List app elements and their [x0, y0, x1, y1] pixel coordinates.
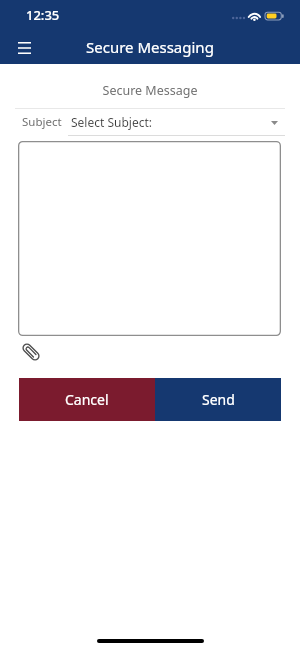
button[interactable]: Select Subject: — [68, 110, 285, 136]
button[interactable]: Attach file — [15, 336, 47, 368]
staticText: Cancel — [65, 390, 109, 409]
staticText: Send — [202, 390, 235, 409]
staticText: Subject — [22, 114, 62, 130]
button[interactable]: Menu — [6, 30, 42, 66]
button[interactable]: Send — [155, 378, 281, 421]
staticText: Secure Message — [0, 82, 300, 99]
button[interactable]: Cancel — [19, 378, 155, 421]
staticText: 12:35 — [26, 6, 60, 24]
staticText: Secure Messaging — [86, 37, 214, 57]
staticText: Select Subject: — [71, 114, 152, 130]
button[interactable] — [18, 141, 281, 336]
